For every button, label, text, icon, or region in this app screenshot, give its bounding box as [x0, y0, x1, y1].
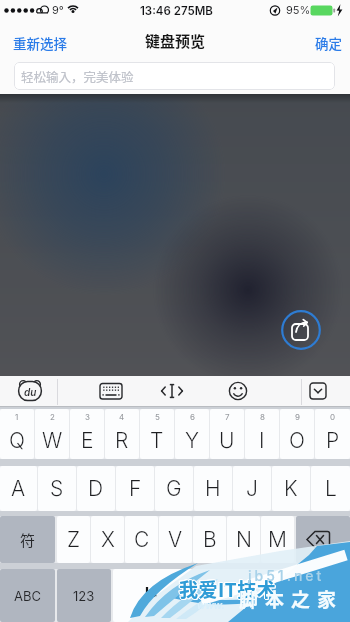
staticText: 我爱IT技术 [180, 575, 278, 603]
staticText: 轻松输入，完美体验 [21, 67, 134, 85]
button[interactable]: 3 [70, 409, 104, 459]
staticText: P [326, 428, 340, 453]
staticText: 重新选择 [13, 33, 67, 53]
staticText: A [11, 476, 26, 501]
staticText: X [101, 527, 115, 552]
staticText: D [88, 476, 104, 501]
button[interactable]: M [261, 516, 294, 563]
button[interactable]: J [233, 466, 271, 511]
staticText: T [150, 428, 164, 453]
button[interactable]: B [193, 516, 226, 563]
staticText: I [259, 428, 265, 453]
button[interactable]: C [125, 516, 158, 563]
button[interactable] [113, 569, 291, 622]
staticText: W [42, 428, 63, 453]
staticText: 1 [15, 412, 19, 422]
button[interactable]: 1 [0, 409, 34, 459]
button[interactable]: 符 [0, 516, 55, 563]
staticText: Z [67, 527, 81, 552]
button[interactable]: D [77, 466, 115, 511]
button[interactable]: X [91, 516, 124, 563]
button[interactable]: 确定 [315, 30, 342, 50]
button[interactable]: 2 [35, 409, 69, 459]
button[interactable]: 9 [280, 409, 314, 459]
staticText: 我爱IT技术 [180, 576, 278, 604]
staticText: 13:46 275MB [140, 4, 213, 18]
staticText: S [50, 476, 64, 501]
staticText: C [134, 527, 150, 552]
staticText: 0 [330, 412, 336, 422]
button[interactable]: ABC [0, 569, 55, 622]
staticText: 3 [85, 412, 90, 422]
button[interactable]: G [155, 466, 193, 511]
staticText: 脚本之家 [239, 585, 344, 613]
staticText: B [203, 527, 217, 552]
staticText: E [81, 428, 94, 453]
staticText: 5 [155, 412, 160, 422]
button[interactable]: 重新选择 [8, 30, 62, 50]
button[interactable] [96, 376, 126, 406]
button[interactable]: 6 [175, 409, 209, 459]
staticText: 8 [260, 412, 265, 422]
staticText: U [219, 428, 235, 453]
staticText: Q [9, 428, 25, 453]
staticText: 我爱IT技术 [178, 574, 276, 602]
staticText: 键盘预览 [145, 30, 206, 52]
staticText: ABC [14, 588, 41, 604]
staticText: Y [185, 428, 199, 453]
button[interactable]: Z [57, 516, 90, 563]
staticText: 符 [20, 529, 36, 551]
staticText: H [205, 476, 221, 501]
staticText: 2 [50, 412, 55, 422]
staticText: 95% [286, 3, 311, 16]
button[interactable]: L [311, 466, 350, 511]
staticText: M [268, 527, 287, 552]
button[interactable]: 轻松输入，完美体验 [14, 62, 335, 90]
button[interactable]: 0 [315, 409, 350, 459]
button[interactable] [296, 516, 350, 563]
staticText: www. [197, 599, 225, 611]
staticText: 9 [295, 412, 300, 422]
staticText: V [168, 527, 183, 552]
button[interactable]: V [159, 516, 192, 563]
button[interactable] [223, 376, 253, 406]
staticText: 4 [119, 412, 125, 422]
staticText: 我爱IT技术 [179, 574, 277, 602]
staticText: G [166, 476, 182, 501]
staticText: J [246, 476, 258, 501]
button[interactable]: K [272, 466, 310, 511]
button[interactable]: S [38, 466, 76, 511]
staticText: 我爱IT技术 [178, 575, 276, 603]
button[interactable]: N [227, 516, 260, 563]
button[interactable] [303, 376, 333, 406]
staticText: 9° [52, 3, 64, 16]
button[interactable] [293, 569, 350, 622]
staticText: jb51.net [248, 567, 325, 584]
staticText: L [325, 476, 337, 501]
staticText: 我爱IT技术 [179, 575, 277, 603]
button[interactable]: F [116, 466, 154, 511]
staticText: K [284, 476, 298, 501]
button[interactable]: 123 [57, 569, 111, 622]
button[interactable] [281, 310, 321, 350]
staticText: 123 [73, 588, 95, 604]
button[interactable]: 4 [105, 409, 139, 459]
button[interactable]: 8 [245, 409, 279, 459]
staticText: 我爱IT技术 [179, 576, 277, 604]
button[interactable]: du [15, 376, 45, 406]
staticText: du [24, 386, 37, 398]
staticText: R [115, 428, 129, 453]
button[interactable]: A [0, 466, 37, 511]
staticText: F [129, 476, 142, 501]
button[interactable]: H [194, 466, 232, 511]
button[interactable]: 7 [210, 409, 244, 459]
staticText: 7 [225, 412, 230, 422]
button[interactable] [157, 376, 187, 406]
staticText: 确定 [315, 33, 342, 53]
staticText: O [289, 428, 305, 453]
button[interactable]: 5 [140, 409, 174, 459]
staticText: N [236, 527, 252, 552]
staticText: 6 [190, 412, 195, 422]
